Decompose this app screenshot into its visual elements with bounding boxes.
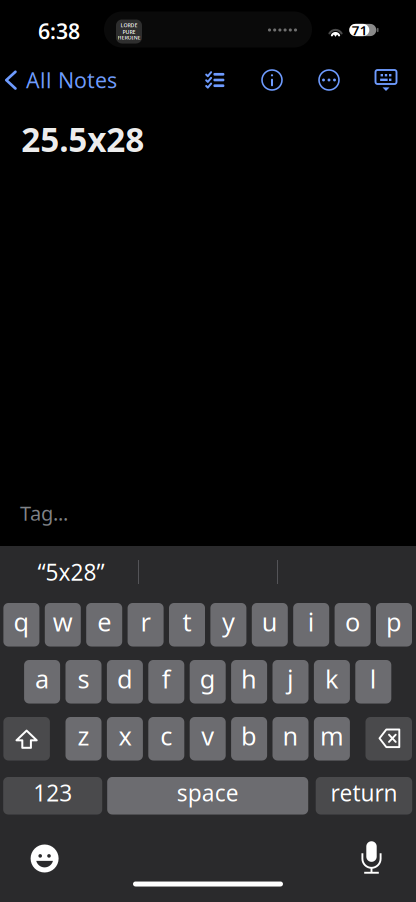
staticText: u — [262, 605, 278, 638]
staticText: x — [118, 719, 131, 752]
button[interactable]: Dictation — [352, 832, 391, 883]
staticText: p — [386, 605, 402, 638]
staticText: z — [77, 719, 89, 752]
button[interactable]: a — [24, 660, 60, 703]
staticText: n — [282, 719, 298, 752]
button[interactable]: 123 — [3, 777, 102, 814]
button[interactable]: t — [169, 603, 205, 646]
button[interactable]: y — [210, 603, 246, 646]
button[interactable]: c — [148, 717, 184, 760]
button[interactable]: p — [376, 603, 412, 646]
staticText: m — [320, 719, 344, 752]
button[interactable]: x — [107, 717, 143, 760]
button[interactable]: s — [65, 660, 101, 703]
staticText: All Notes — [26, 66, 117, 94]
button[interactable]: k — [314, 660, 350, 703]
staticText: o — [345, 605, 360, 638]
staticText: 25.5x28 — [21, 117, 144, 161]
staticText: j — [287, 662, 294, 695]
button[interactable]: Emoji Keyboard — [22, 835, 68, 881]
button[interactable]: g — [190, 660, 226, 703]
button[interactable]: Shift — [3, 717, 50, 760]
staticText: c — [160, 719, 172, 752]
staticText: y — [222, 605, 235, 638]
staticText: Tag... — [20, 500, 68, 526]
button[interactable]: More — [312, 63, 346, 97]
button[interactable]: m — [314, 717, 350, 760]
button[interactable]: n — [272, 717, 308, 760]
staticText: PURE — [122, 28, 135, 36]
staticText: a — [35, 662, 49, 695]
button[interactable]: e — [86, 603, 122, 646]
staticText: LORDE — [120, 22, 137, 29]
staticText: b — [241, 719, 257, 752]
button[interactable]: u — [252, 603, 288, 646]
staticText: “5x28” — [37, 557, 104, 587]
button[interactable]: space — [107, 777, 308, 814]
button[interactable]: b — [231, 717, 267, 760]
button[interactable]: o — [335, 603, 371, 646]
staticText: t — [182, 605, 191, 638]
staticText: k — [325, 662, 339, 695]
button[interactable]: Hide Keyboard — [369, 64, 402, 98]
staticText: space — [177, 778, 239, 808]
staticText: e — [97, 605, 111, 638]
staticText: l — [370, 662, 377, 695]
staticText: 6:38 — [38, 17, 80, 45]
button[interactable]: z — [65, 717, 101, 760]
button[interactable]: l — [355, 660, 391, 703]
button[interactable]: Tag... — [14, 496, 74, 530]
button[interactable]: j — [272, 660, 308, 703]
staticText: f — [162, 662, 171, 695]
button[interactable]: i — [293, 603, 329, 646]
staticText: 123 — [33, 778, 72, 808]
staticText: return — [330, 778, 397, 808]
button[interactable]: Delete — [365, 717, 412, 760]
staticText: d — [117, 662, 133, 695]
button[interactable]: All Notes — [0, 58, 123, 102]
staticText: g — [200, 662, 216, 695]
button[interactable]: q — [3, 603, 39, 646]
staticText: HEROINE — [117, 34, 140, 41]
staticText: v — [201, 719, 214, 752]
staticText: w — [53, 605, 73, 638]
staticText: h — [241, 662, 257, 695]
button[interactable]: Checklist — [197, 62, 232, 97]
staticText: q — [13, 605, 29, 638]
staticText: r — [141, 605, 151, 638]
button[interactable]: d — [107, 660, 143, 703]
button[interactable]: w — [45, 603, 81, 646]
button[interactable]: f — [148, 660, 184, 703]
button[interactable]: Info — [255, 63, 289, 97]
button[interactable]: return — [316, 777, 412, 814]
button[interactable]: “5x28” — [27, 551, 114, 593]
button[interactable]: r — [128, 603, 164, 646]
staticText: s — [77, 662, 89, 695]
staticText: 71 — [352, 21, 368, 39]
button[interactable]: v — [190, 717, 226, 760]
button[interactable]: h — [231, 660, 267, 703]
staticText: i — [308, 605, 315, 638]
